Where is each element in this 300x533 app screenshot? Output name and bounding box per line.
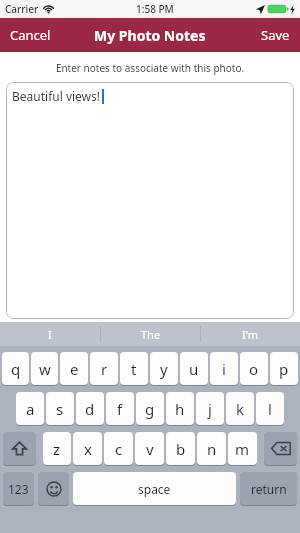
staticText: return [251,481,287,497]
button[interactable]: q [2,352,29,385]
button[interactable]: 123 [3,472,34,505]
button[interactable]: m [228,432,257,465]
staticText: x [84,439,92,459]
staticText: c [115,439,123,459]
button[interactable]: n [197,432,226,465]
staticText: I [48,327,52,342]
staticText: r [101,359,108,379]
button[interactable]: r [90,352,118,385]
button[interactable]: d [76,392,104,425]
staticText: g [145,399,155,419]
button[interactable]: e [60,352,88,385]
staticText: Enter notes to associate with this photo… [0,61,300,75]
button[interactable]: k [226,392,254,425]
staticText: b [176,439,186,459]
button[interactable]: Shift [3,432,36,465]
staticText: Carrier [5,2,39,16]
button[interactable]: o [240,352,268,385]
button[interactable]: x [73,432,102,465]
staticText: Beautiful views! [12,88,101,104]
button[interactable]: Backspace [264,432,297,465]
staticText: q [11,359,21,379]
button[interactable]: I [0,322,100,346]
button[interactable]: h [166,392,194,425]
button[interactable]: Beautiful views! [6,82,294,319]
button[interactable]: I'm [201,322,300,346]
staticText: o [249,359,259,379]
staticText: i [222,359,226,379]
button[interactable]: i [210,352,238,385]
staticText: u [189,359,199,379]
staticText: 123 [8,481,29,497]
button[interactable]: return [240,472,297,505]
staticText: My Photo Notes [94,26,206,45]
button[interactable]: u [180,352,208,385]
staticText: j [208,399,212,419]
staticText: p [279,359,289,379]
button[interactable]: t [120,352,148,385]
button[interactable]: l [256,392,284,425]
staticText: n [207,439,217,459]
staticText: I'm [242,327,259,342]
button[interactable]: a [16,392,44,425]
staticText: v [146,439,154,459]
staticText: w [39,359,51,379]
button[interactable]: Save [251,18,300,52]
button[interactable]: p [270,352,298,385]
staticText: space [138,481,171,497]
button[interactable]: j [196,392,224,425]
button[interactable]: Cancel [0,18,61,52]
button[interactable]: f [106,392,134,425]
staticText: y [160,359,168,379]
staticText: e [70,359,79,379]
button[interactable]: c [104,432,133,465]
staticText: d [85,399,95,419]
staticText: Save [261,26,290,44]
button[interactable]: space [73,472,236,505]
button[interactable]: w [31,352,58,385]
staticText: a [26,399,35,419]
staticText: f [117,399,123,419]
button[interactable]: v [135,432,164,465]
button[interactable]: Emoji [38,472,69,505]
button[interactable]: z [43,432,71,465]
staticText: z [53,439,61,459]
button[interactable]: g [136,392,164,425]
button[interactable]: b [166,432,195,465]
staticText: 1:58 PM [136,2,174,16]
staticText: h [175,399,185,419]
staticText: The [141,327,161,342]
staticText: Cancel [10,26,51,44]
staticText: t [131,359,137,379]
button[interactable]: y [150,352,178,385]
button[interactable]: The [101,322,200,346]
staticText: s [56,399,64,419]
button[interactable]: s [46,392,74,425]
staticText: m [235,439,250,459]
staticText: l [268,399,272,419]
staticText: k [236,399,245,419]
